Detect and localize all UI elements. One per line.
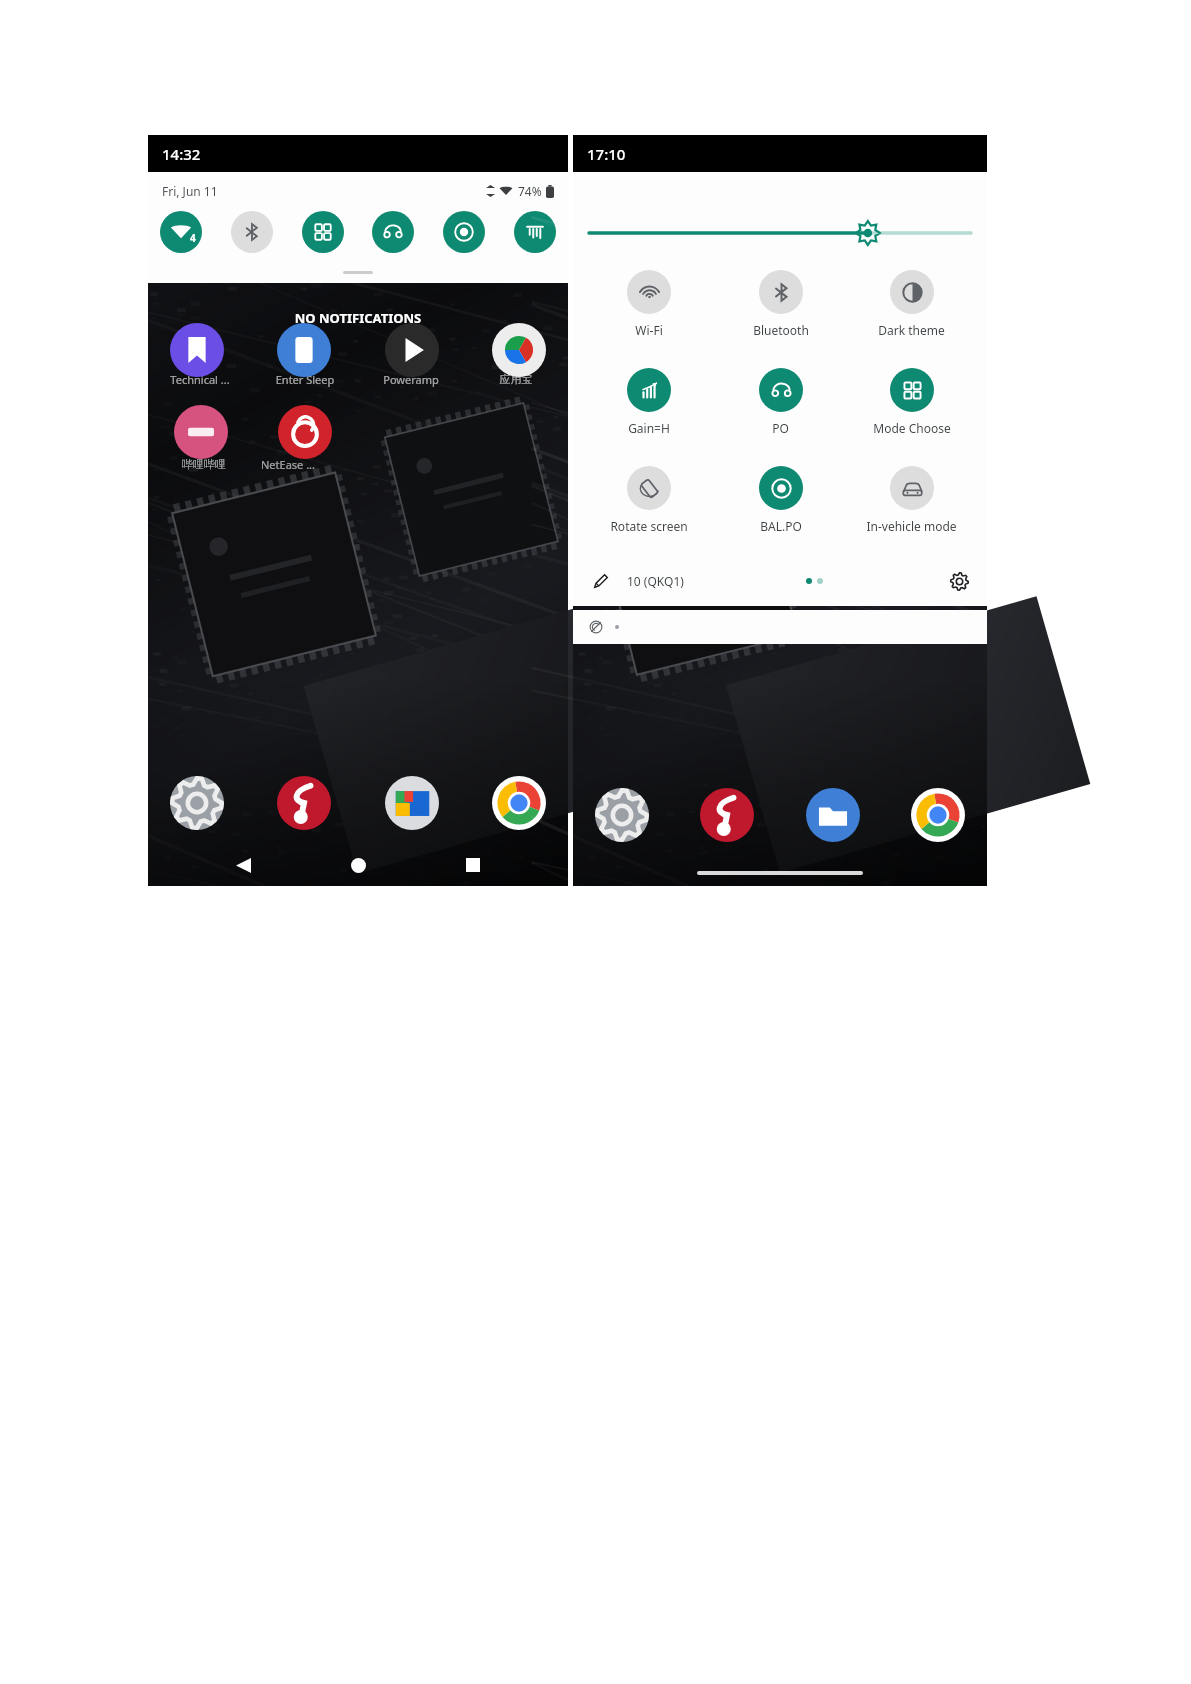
button[interactable]: Dark theme [890, 270, 934, 314]
button[interactable]: Edit tiles [587, 568, 613, 594]
button[interactable]: Rotate screen [583, 466, 715, 534]
button[interactable]: BAL.PO [715, 466, 846, 534]
button[interactable]: Back [223, 848, 263, 882]
staticText: 10 (QKQ1) [627, 573, 684, 589]
staticText: Technical ... [158, 372, 242, 387]
button[interactable] [589, 216, 971, 250]
staticText: NetEase ... [246, 457, 330, 472]
button[interactable]: In-vehicle mode [890, 466, 934, 510]
button[interactable] [277, 323, 331, 377]
staticText: 14:32 [162, 144, 201, 164]
staticText: Enter Sleep [263, 372, 347, 387]
staticText: 17:10 [587, 144, 626, 164]
button[interactable]: Chrome [911, 788, 965, 842]
staticText: PO [772, 420, 789, 436]
button[interactable]: Equalizer [514, 211, 556, 253]
button[interactable]: Settings [170, 776, 224, 830]
button[interactable]: Mode Choose [846, 368, 977, 436]
button[interactable]: Mode Choose [302, 211, 344, 253]
button[interactable] [385, 323, 439, 377]
button[interactable]: Settings [945, 567, 973, 595]
button[interactable]: PO [759, 368, 803, 412]
button[interactable]: In-vehicle mode [846, 466, 977, 534]
button[interactable] [278, 405, 332, 459]
button[interactable] [573, 610, 987, 644]
button[interactable]: Wi-Fi [627, 270, 671, 314]
button[interactable]: Bluetooth [231, 211, 273, 253]
button[interactable]: Home [338, 848, 378, 882]
button[interactable] [148, 267, 568, 277]
button[interactable] [174, 405, 228, 459]
button[interactable] [170, 323, 224, 377]
button[interactable]: Gain=H [583, 368, 715, 436]
button[interactable]: Mode Choose [890, 368, 934, 412]
staticText: Gain=H [628, 420, 670, 436]
button[interactable]: BAL.PO [443, 211, 485, 253]
staticText: Bluetooth [753, 322, 809, 338]
staticText: Fri, Jun 11 [162, 183, 218, 199]
button[interactable]: Dark theme [846, 270, 977, 338]
button[interactable]: Rotate screen [627, 466, 671, 510]
staticText: Rotate screen [610, 518, 688, 534]
button[interactable]: Bluetooth [715, 270, 846, 338]
staticText: Dark theme [878, 322, 945, 338]
staticText: 4 [190, 231, 196, 245]
button[interactable]: Wi-Fi [160, 211, 202, 253]
button[interactable]: Settings [595, 788, 649, 842]
staticText: Wi-Fi [635, 322, 663, 338]
staticText: Mode Choose [873, 420, 951, 436]
button[interactable]: Files [806, 788, 860, 842]
button[interactable]: Wi-Fi [583, 270, 715, 338]
button[interactable]: Chrome [492, 776, 546, 830]
staticText: BAL.PO [760, 518, 802, 534]
button[interactable]: PO [372, 211, 414, 253]
staticText: 哔哩哔哩 [162, 457, 246, 471]
staticText: 应用宝 [474, 372, 558, 386]
button[interactable]: Bluetooth [759, 270, 803, 314]
staticText: In-vehicle mode [866, 518, 957, 534]
button[interactable]: BAL.PO [759, 466, 803, 510]
button[interactable]: Recents [453, 848, 493, 882]
staticText: 74% [518, 183, 542, 199]
button[interactable]: PO [715, 368, 846, 436]
button[interactable]: Poweramp [700, 788, 754, 842]
staticText: NO NOTIFICATIONS [148, 309, 568, 327]
button[interactable]: Files [385, 776, 439, 830]
button[interactable] [492, 323, 546, 377]
button[interactable]: Gain=H [627, 368, 671, 412]
staticText: Poweramp [369, 372, 453, 387]
button[interactable]: Poweramp [277, 776, 331, 830]
